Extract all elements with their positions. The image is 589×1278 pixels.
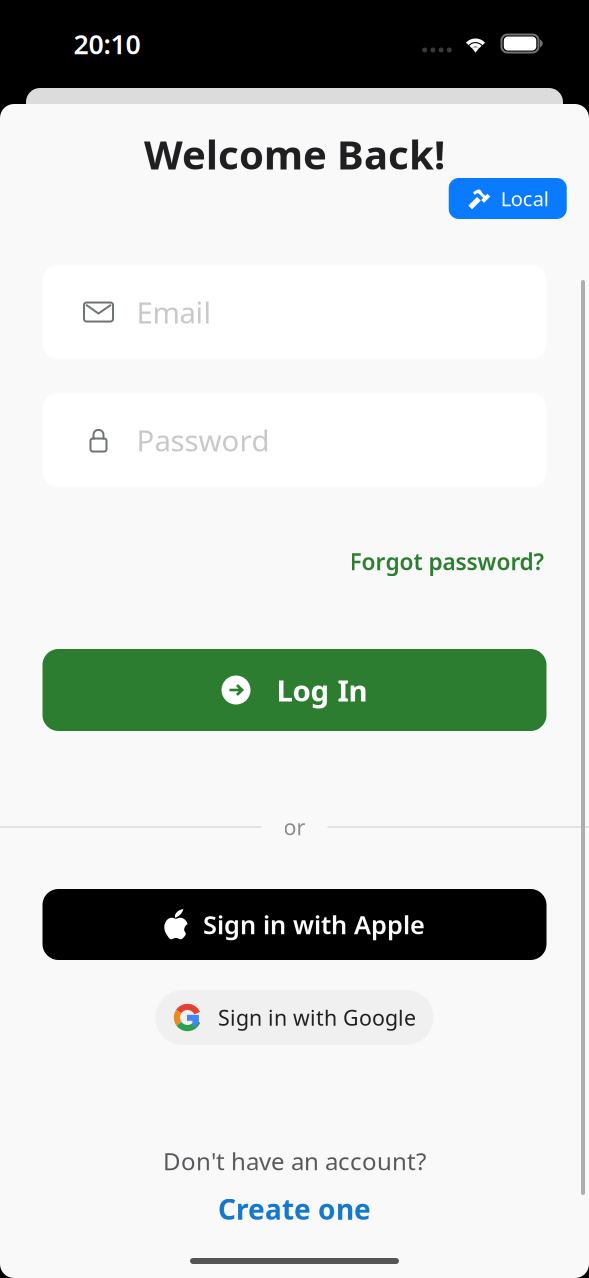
button[interactable]: Sign in with Google [155, 990, 433, 1045]
staticText: Sign in with Apple [203, 908, 425, 941]
staticText: Email [136, 292, 211, 331]
button[interactable]: Email [42, 264, 546, 359]
staticText: Log In [276, 670, 367, 709]
staticText: Welcome Back! [144, 127, 445, 180]
button[interactable]: Sign in with Apple [42, 889, 546, 960]
staticText: 20:10 [73, 26, 140, 62]
staticText: Local [501, 185, 549, 212]
staticText: Create one [218, 1190, 371, 1228]
button[interactable]: Password [42, 392, 546, 487]
staticText: Forgot password? [349, 546, 543, 576]
staticText: Don't have an account? [163, 1145, 426, 1177]
button[interactable]: Create one [210, 1182, 379, 1236]
button[interactable]: Forgot password? [343, 537, 549, 585]
staticText: Password [136, 420, 269, 459]
button[interactable]: Local [449, 178, 567, 219]
button[interactable]: Log In [42, 649, 546, 731]
staticText: or [283, 813, 305, 841]
staticText: Sign in with Google [218, 1003, 416, 1032]
